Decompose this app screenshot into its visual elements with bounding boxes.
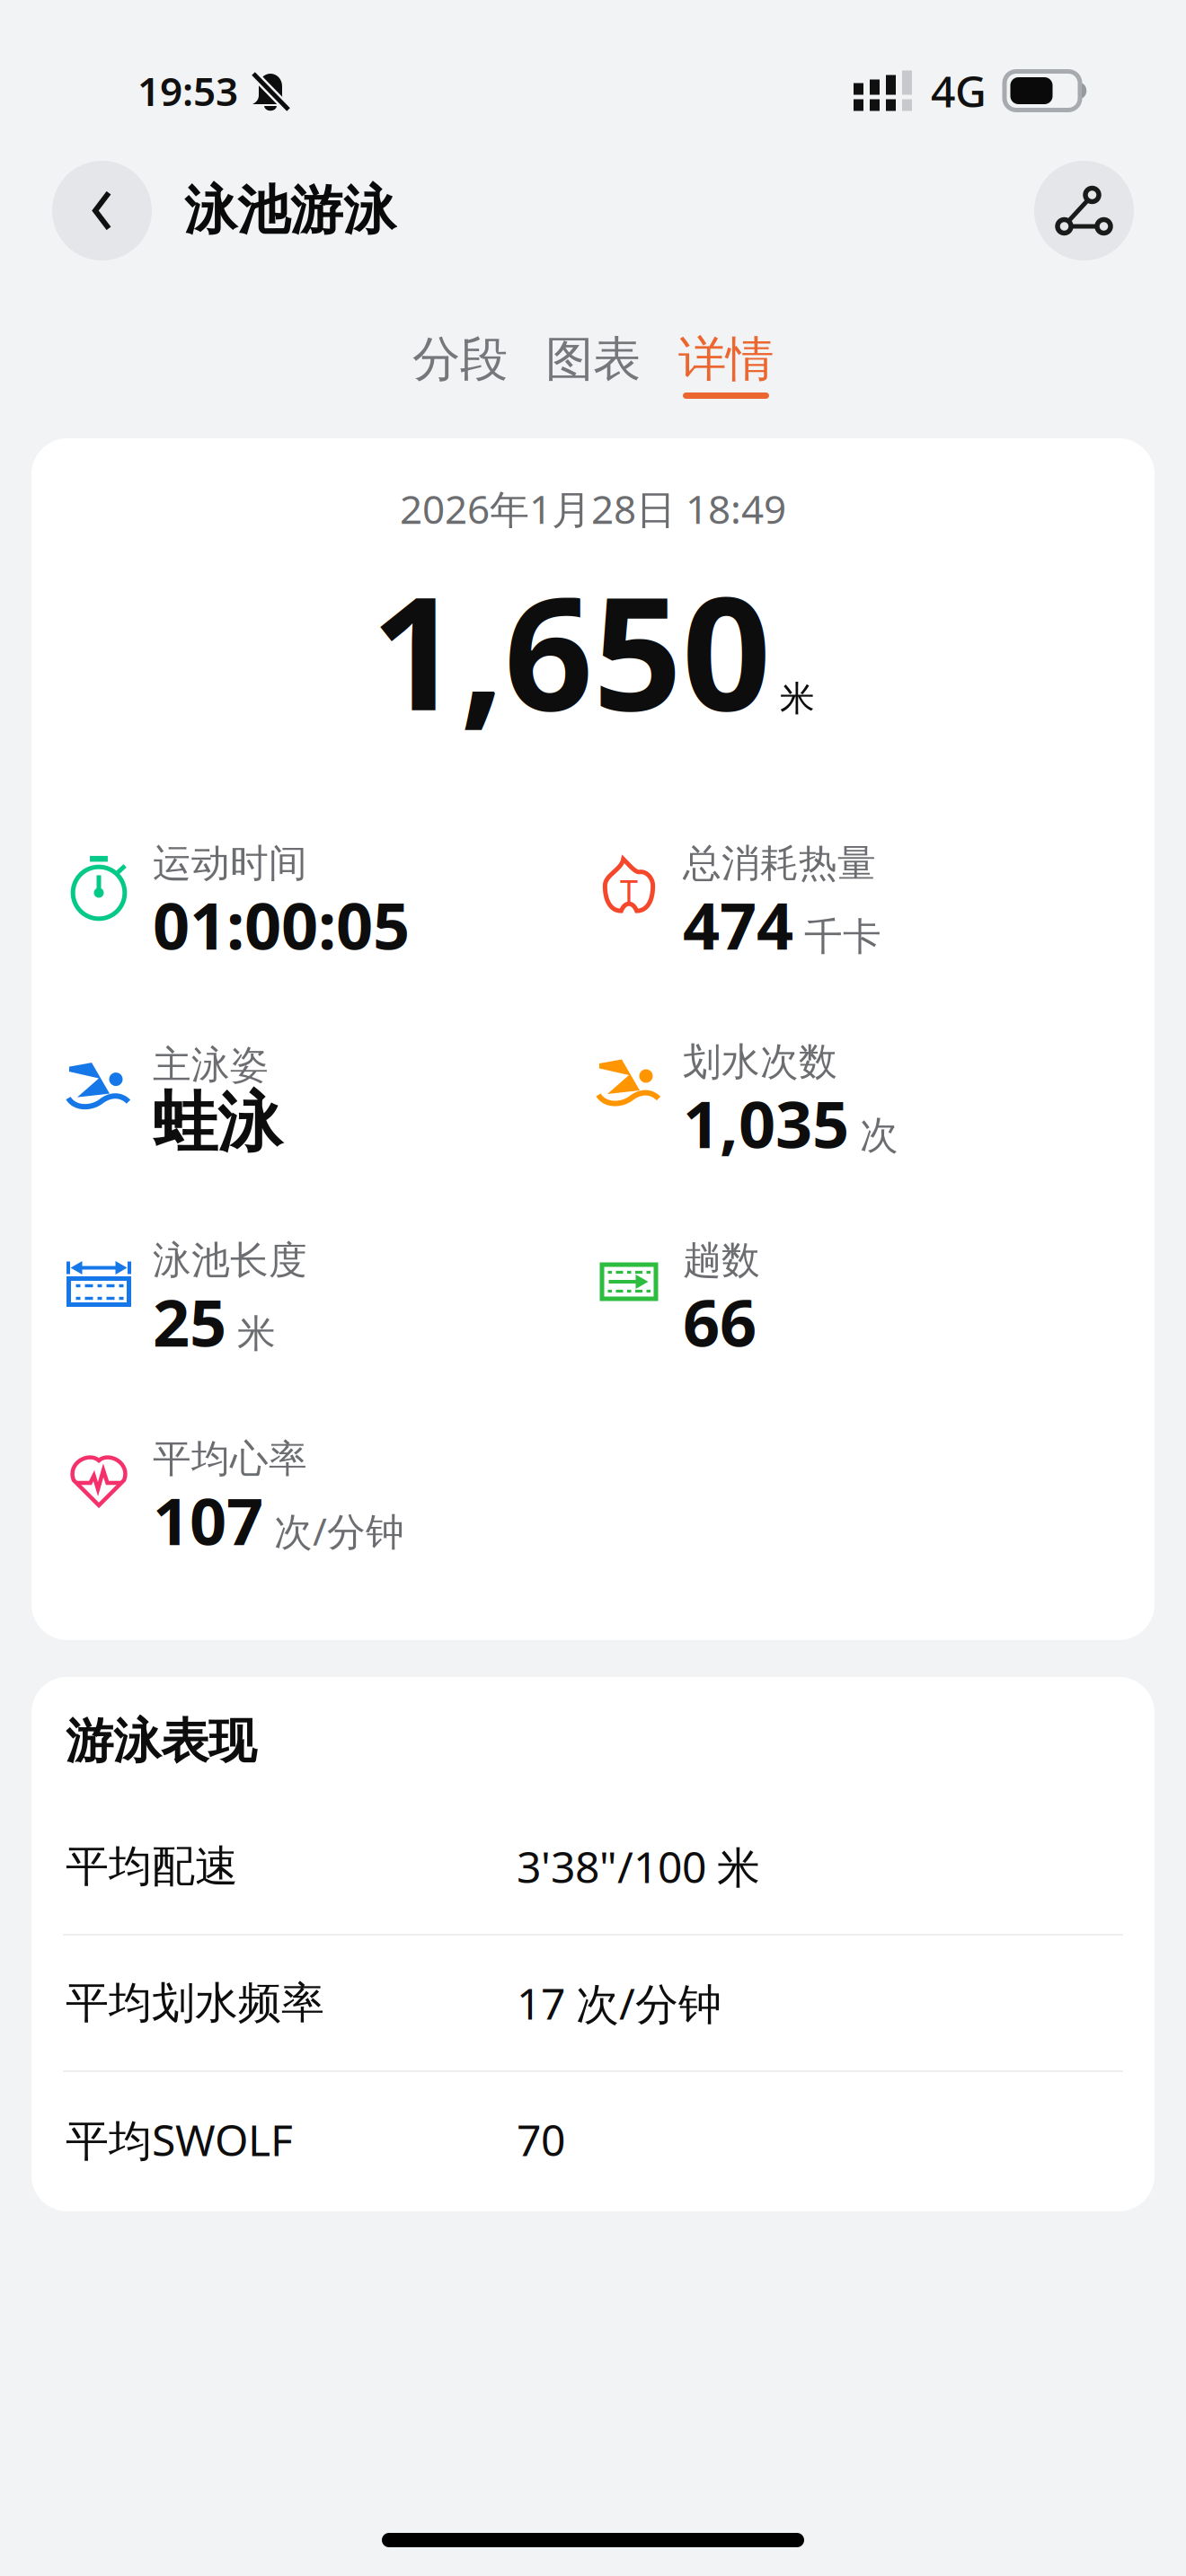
staticText: 泳池长度 (153, 1237, 307, 1284)
staticText: 2026年1月28日 18:49 (400, 482, 786, 535)
staticText: 游泳表现 (66, 1712, 256, 1771)
staticText: 19:53 (137, 64, 238, 117)
staticText: 平均心率 (153, 1435, 307, 1482)
button[interactable]: Back (52, 161, 152, 260)
staticText: 总消耗热量 (683, 840, 876, 887)
staticText: 主泳姿 (153, 1042, 269, 1089)
staticText: T (620, 870, 638, 912)
staticText: 3'38"/100 米 (517, 1838, 760, 1895)
staticText: 平均SWOLF (66, 2111, 293, 2168)
staticText: 次 (860, 1112, 898, 1159)
button[interactable]: 详情 (677, 331, 775, 438)
staticText: 次/分钟 (274, 1505, 404, 1556)
staticText: 4G (931, 62, 987, 119)
staticText: 01:00:05 (153, 881, 410, 967)
button[interactable]: 图表 (544, 331, 642, 438)
staticText: 泳池游泳 (184, 178, 396, 243)
button[interactable]: Share (1034, 161, 1134, 260)
staticText: 66 (683, 1278, 757, 1364)
staticText: 平均配速 (66, 1840, 238, 1893)
staticText: 千卡 (804, 913, 881, 960)
staticText: 米 (237, 1310, 276, 1357)
staticText: 25 (153, 1278, 226, 1364)
staticText: 分段 (412, 330, 508, 389)
staticText: 70 (517, 2111, 565, 2168)
staticText: 1,650 (371, 546, 771, 753)
staticText: 米 (780, 677, 815, 720)
staticText: 运动时间 (153, 840, 307, 887)
staticText: 1,035 (683, 1080, 849, 1166)
staticText: 图表 (545, 330, 641, 389)
staticText: 划水次数 (683, 1038, 837, 1085)
button[interactable]: 分段 (411, 331, 509, 438)
staticText: 详情 (678, 330, 774, 389)
staticText: 17 次/分钟 (517, 1974, 721, 2032)
staticText: 474 (683, 881, 793, 967)
staticText: 107 (153, 1477, 263, 1563)
staticText: 蛙泳 (153, 1083, 282, 1163)
staticText: 平均划水频率 (66, 1976, 324, 2029)
staticText: 趟数 (683, 1237, 760, 1284)
